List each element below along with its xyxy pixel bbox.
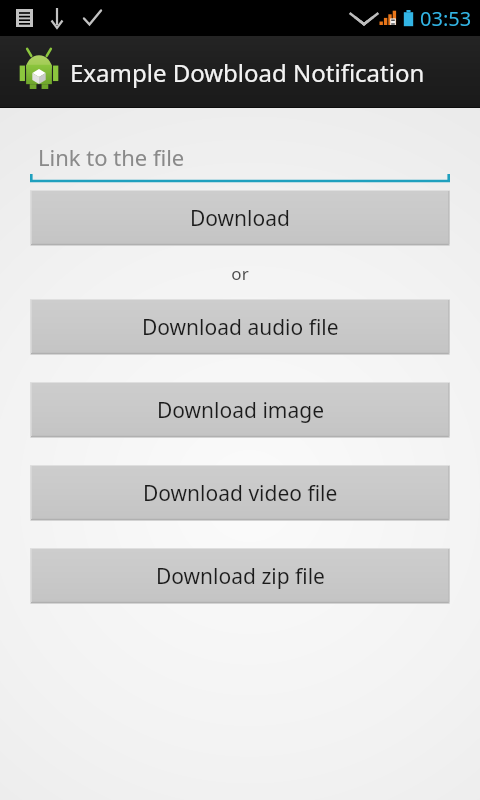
button[interactable]: Download zip file xyxy=(30,548,450,604)
staticText: or xyxy=(30,262,450,285)
button[interactable]: Download video file xyxy=(30,465,450,521)
button[interactable]: Download xyxy=(30,190,450,246)
staticText: Download audio file xyxy=(142,313,339,342)
staticText: Download image xyxy=(157,396,324,425)
staticText: Download zip file xyxy=(156,562,325,591)
staticText: Download xyxy=(190,204,290,233)
staticText: Example Dowbload Notification xyxy=(70,56,425,89)
button[interactable]: Download image xyxy=(30,382,450,438)
staticText: Download video file xyxy=(143,479,338,508)
button[interactable]: Link to the file xyxy=(30,136,450,184)
staticText: Link to the file xyxy=(38,142,185,172)
staticText: 03:53 xyxy=(420,5,472,32)
button[interactable]: Download audio file xyxy=(30,299,450,355)
